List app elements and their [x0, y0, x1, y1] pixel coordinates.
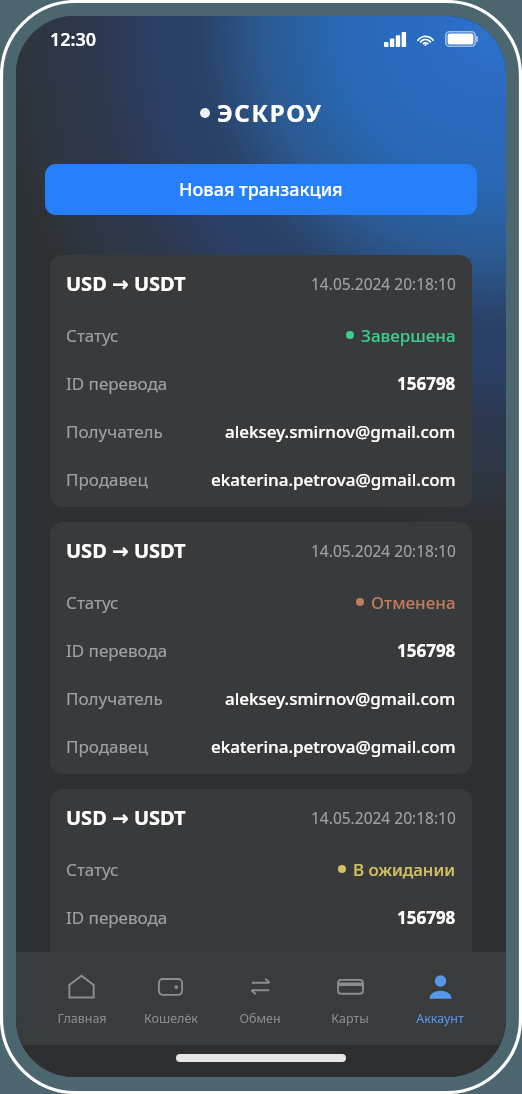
staticText: Продавец: [66, 468, 148, 491]
staticText: ID перевода: [66, 906, 168, 929]
staticText: Кошелёк: [144, 1010, 198, 1027]
staticText: ekaterina.petrova@gmail.com: [211, 468, 456, 491]
staticText: Завершена: [361, 324, 456, 347]
button[interactable]: Аккаунт: [395, 952, 485, 1027]
staticText: ekaterina.petrova@gmail.com: [211, 1002, 456, 1025]
staticText: 156798: [397, 906, 456, 929]
staticText: aleksey.smirnov@gmail.com: [225, 420, 456, 443]
staticText: Продавец: [66, 1002, 148, 1025]
staticText: USD → USDT: [66, 270, 186, 297]
staticText: 12:30: [50, 27, 97, 52]
staticText: ЭСКРОУ: [217, 96, 323, 129]
staticText: Продавец: [66, 735, 148, 758]
staticText: Новая транзакция: [179, 177, 343, 202]
button[interactable]: Новая транзакция: [45, 164, 477, 215]
button[interactable]: USD → USDT: [50, 789, 472, 1041]
staticText: Статус: [66, 858, 119, 881]
staticText: Получатель: [66, 954, 163, 977]
staticText: Главная: [57, 1010, 107, 1027]
staticText: 14.05.2024 20:18:10: [311, 540, 456, 561]
staticText: Карты: [331, 1010, 369, 1027]
button[interactable]: USD → USDT: [50, 522, 472, 774]
button[interactable]: Обмен: [215, 952, 305, 1027]
staticText: Статус: [66, 324, 119, 347]
staticText: Получатель: [66, 687, 163, 710]
staticText: ID перевода: [66, 372, 168, 395]
staticText: Получатель: [66, 420, 163, 443]
staticText: 14.05.2024 20:18:10: [311, 273, 456, 294]
staticText: 156798: [397, 372, 456, 395]
staticText: Обмен: [239, 1010, 281, 1027]
staticText: aleksey.smirnov@gmail.com: [225, 687, 456, 710]
staticText: ID перевода: [66, 639, 168, 662]
staticText: Аккаунт: [416, 1010, 464, 1027]
staticText: 14.05.2024 20:18:10: [311, 807, 456, 828]
staticText: 156798: [397, 639, 456, 662]
staticText: В ожидании: [353, 858, 456, 881]
button[interactable]: Главная: [37, 952, 126, 1027]
button[interactable]: Кошелёк: [126, 952, 215, 1027]
button[interactable]: USD → USDT: [50, 255, 472, 507]
staticText: Статус: [66, 591, 119, 614]
staticText: Отменена: [371, 591, 456, 614]
staticText: USD → USDT: [66, 537, 186, 564]
staticText: aleksey.smirnov@gmail.com: [225, 954, 456, 977]
staticText: USD → USDT: [66, 804, 186, 831]
staticText: ekaterina.petrova@gmail.com: [211, 735, 456, 758]
button[interactable]: Карты: [305, 952, 395, 1027]
